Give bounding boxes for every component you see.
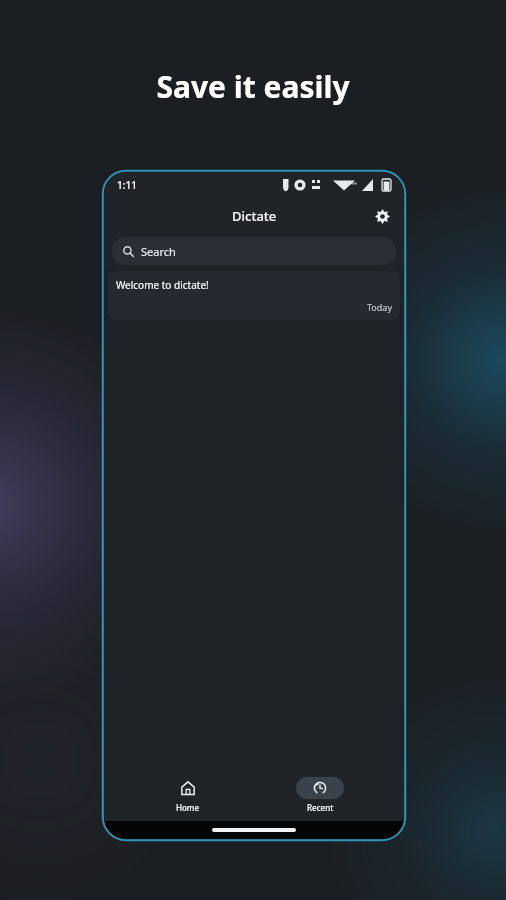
staticText: Save it easily [156, 66, 350, 107]
button[interactable]: Recent [272, 772, 368, 817]
staticText: Home [176, 802, 200, 813]
staticText: Search [141, 244, 176, 259]
staticText: Dictate [232, 207, 277, 225]
staticText: Welcome to dictate! [116, 278, 209, 292]
staticText: Recent [307, 802, 334, 813]
button[interactable]: Home [140, 772, 236, 817]
button[interactable]: Search [112, 237, 396, 265]
staticText: 1:11 [117, 178, 137, 192]
button[interactable]: Welcome to dictate! [108, 271, 400, 320]
staticText: Today [367, 301, 392, 313]
button[interactable]: Settings [368, 202, 396, 230]
